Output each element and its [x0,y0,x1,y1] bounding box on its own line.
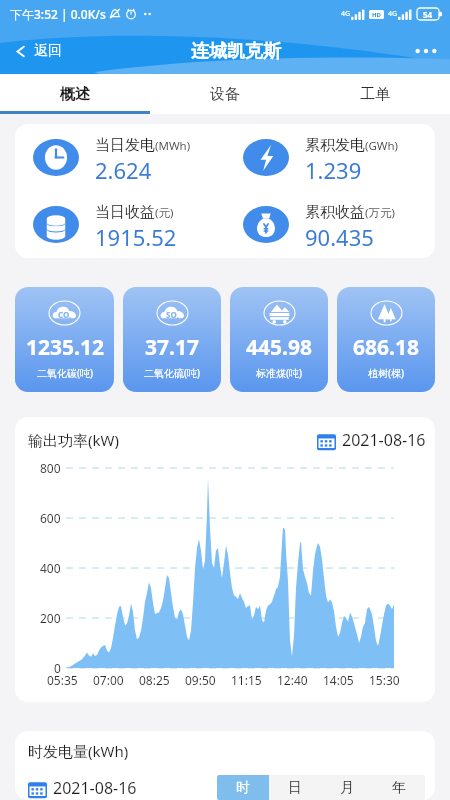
staticText: 2021-08-16 [53,777,137,799]
staticText: 时 [236,779,250,797]
button[interactable]: 概述 [0,74,150,114]
staticText: 0 [54,660,61,676]
staticText: CO₂ [58,309,72,320]
staticText: 07:00 [93,672,124,688]
button[interactable]: 2021-08-16 [28,777,137,799]
staticText: 二氧化碳(吨) [37,366,93,380]
button[interactable]: 月 [321,775,373,800]
button[interactable]: 返回 [0,28,70,74]
staticText: 1235.12 [26,333,104,362]
button[interactable]: 2021-08-16 [317,429,426,451]
staticText: 90.435 [305,222,374,252]
staticText: SO₂ [166,309,179,320]
button[interactable]: 日 [269,775,321,800]
staticText: 当日收益(元) [95,203,174,222]
button[interactable]: 686.18 [337,287,435,392]
staticText: 400 [40,560,61,576]
staticText: 年 [392,779,406,797]
staticText: 09:50 [185,672,216,688]
staticText: 累积收益(万元) [305,203,395,222]
staticText: 返回 [34,42,62,60]
button[interactable]: 当日收益(元) [15,191,225,258]
staticText: 600 [40,510,61,526]
staticText: 15:30 [369,672,400,688]
staticText: 1915.52 [95,222,177,252]
staticText: 2021-08-16 [342,429,426,451]
staticText: 累积发电(GWh) [305,136,399,155]
staticText: 输出功率(kW) [28,430,119,450]
staticText: 设备 [210,85,240,104]
button[interactable]: 累积发电(GWh) [225,124,435,191]
staticText: 4G [341,9,351,19]
staticText: 连城凯克斯 [191,40,281,63]
staticText: 12:40 [277,672,308,688]
staticText: 植树(棵) [368,366,404,380]
staticText: 概述 [60,85,90,104]
staticText: 1.239 [305,155,362,185]
staticText: 800 [40,460,61,476]
staticText: HD [372,11,381,19]
staticText: 工单 [360,85,390,104]
staticText: 05:35 [47,672,78,688]
staticText: 日 [288,779,302,797]
staticText: 200 [40,610,61,626]
staticText: 当日发电(MWh) [95,136,191,155]
button[interactable]: 时 [217,775,269,800]
button[interactable]: More options [402,28,450,74]
staticText: 08:25 [139,672,170,688]
staticText: 标准煤(吨) [256,366,302,380]
staticText: 4G [388,9,398,19]
staticText: 2.624 [95,155,152,185]
staticText: 月 [340,779,354,797]
button[interactable]: 工单 [300,74,450,114]
staticText: 14:05 [323,672,354,688]
button[interactable]: SO₂ [123,287,221,392]
staticText: 445.98 [246,333,312,362]
button[interactable]: 累积收益(万元) [225,191,435,258]
button[interactable]: 当日发电(MWh) [15,124,225,191]
button[interactable]: 年 [373,775,425,800]
staticText: 37.17 [145,333,199,362]
staticText: 11:15 [231,672,262,688]
button[interactable]: CO₂ [15,287,114,392]
staticText: 686.18 [353,333,419,362]
staticText: 时发电量(kWh) [28,741,129,761]
staticText: 54 [423,9,433,20]
button[interactable]: 445.98 [230,287,328,392]
staticText: 二氧化硫(吨) [144,366,200,380]
button[interactable]: 设备 [150,74,300,114]
staticText: 下午3:52 | 0.0K/s [10,6,106,22]
